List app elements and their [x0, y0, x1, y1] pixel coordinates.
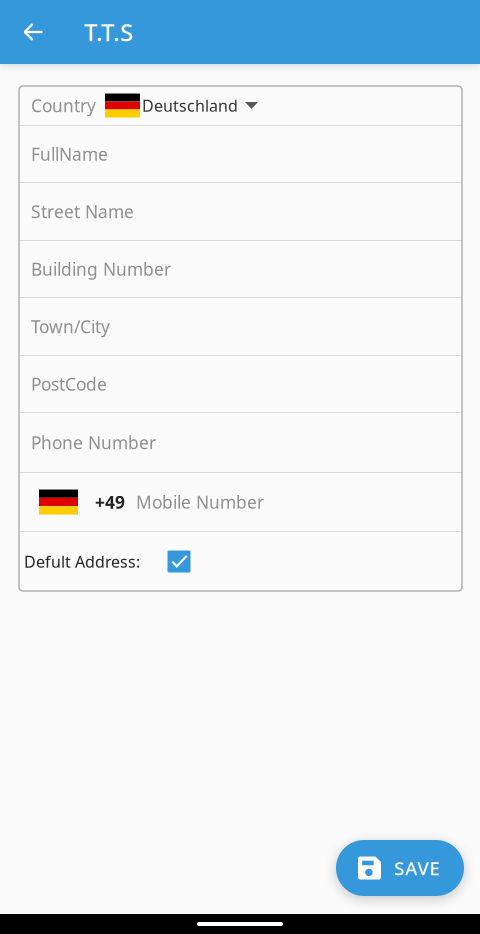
staticText: Town/City: [31, 315, 110, 338]
staticText: Phone Number: [31, 431, 156, 454]
button[interactable]: SAVE: [336, 840, 464, 896]
staticText: SAVE: [394, 856, 439, 880]
staticText: PostCode: [31, 372, 107, 395]
button[interactable]: Default Address: [157, 539, 201, 583]
staticText: Mobile Number: [136, 490, 264, 513]
staticText: +49: [95, 490, 125, 513]
staticText: Building Number: [31, 257, 171, 280]
staticText: Street Name: [31, 200, 134, 223]
staticText: T.T.S: [84, 16, 133, 48]
button[interactable]: Back: [12, 0, 54, 64]
staticText: Deutschland: [142, 95, 238, 116]
staticText: Country: [31, 94, 96, 117]
staticText: FullName: [31, 142, 108, 165]
staticText: Defult Address:: [24, 551, 140, 572]
